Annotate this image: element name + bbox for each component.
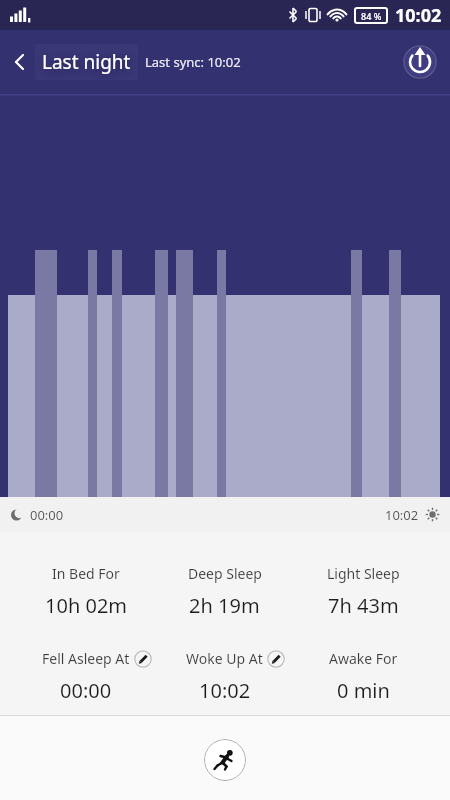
button[interactable]: Fell Asleep At <box>17 649 155 704</box>
staticText: Fell Asleep At <box>42 649 130 668</box>
staticText: Awake For <box>329 649 398 668</box>
staticText: Light Sleep <box>327 564 400 583</box>
button[interactable] <box>7 49 33 75</box>
staticText: 0 min <box>337 677 390 704</box>
staticText: Last night <box>42 49 131 75</box>
staticText: 10:02 <box>199 677 251 704</box>
button[interactable] <box>0 93 450 497</box>
button[interactable]: Light Sleep <box>294 564 433 619</box>
staticText: 10h 02m <box>45 592 128 619</box>
button[interactable]: Woke Up At <box>155 649 294 704</box>
staticText: 10:02 <box>385 506 419 524</box>
button[interactable]: Last night <box>35 44 138 80</box>
staticText: In Bed For <box>52 564 120 583</box>
staticText: 00:00 <box>60 677 112 704</box>
staticText: 00:00 <box>30 506 64 524</box>
staticText: Woke Up At <box>186 649 263 668</box>
button[interactable] <box>400 42 440 82</box>
button[interactable]: In Bed For <box>17 564 155 619</box>
button[interactable]: Deep Sleep <box>155 564 294 619</box>
button[interactable] <box>204 739 246 781</box>
staticText: Last sync: 10:02 <box>145 53 241 71</box>
button[interactable]: Awake For <box>294 649 433 704</box>
staticText: 2h 19m <box>189 592 260 619</box>
staticText: 84 % <box>361 10 382 22</box>
staticText: Deep Sleep <box>188 564 262 583</box>
staticText: 7h 43m <box>328 592 399 619</box>
staticText: 10:02 <box>395 3 442 28</box>
